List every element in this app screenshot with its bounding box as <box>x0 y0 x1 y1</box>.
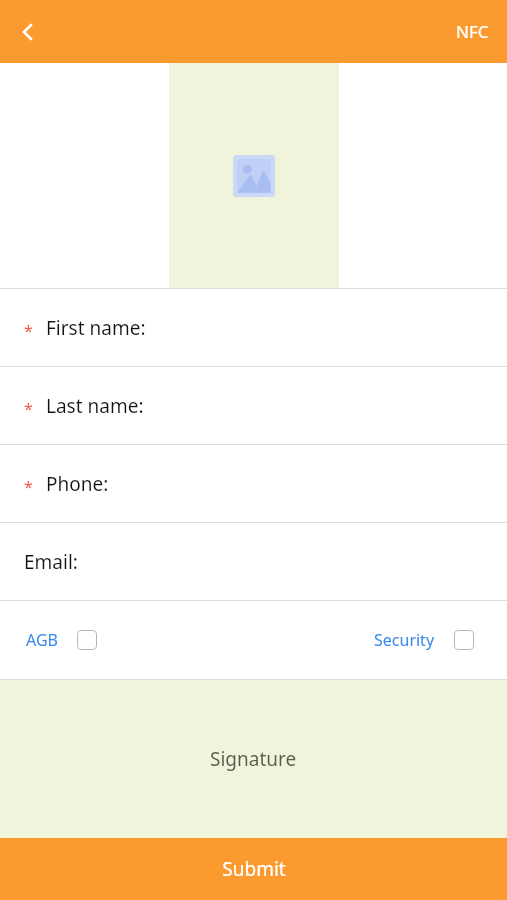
other: Checkbox <box>77 630 97 650</box>
button[interactable]: * <box>0 367 507 444</box>
staticText: Last name: <box>46 393 144 419</box>
staticText: Submit <box>222 856 286 882</box>
button[interactable]: Security <box>368 623 507 657</box>
button[interactable]: Add photo <box>169 63 339 288</box>
staticText: First name: <box>46 315 146 341</box>
button[interactable]: Submit <box>0 838 507 900</box>
staticText: * <box>24 398 33 420</box>
staticText: AGB <box>26 629 58 651</box>
staticText: Security <box>374 629 435 651</box>
button[interactable]: AGB <box>0 623 103 657</box>
staticText: Signature <box>210 746 297 772</box>
staticText: * <box>24 476 33 498</box>
button[interactable]: * <box>0 445 507 522</box>
staticText: * <box>24 320 33 342</box>
staticText: Phone: <box>46 471 109 497</box>
staticText: Email: <box>24 549 78 575</box>
button[interactable]: NFC <box>446 12 499 51</box>
button[interactable]: Back <box>4 8 52 56</box>
button[interactable]: * <box>0 289 507 366</box>
other: Checkbox <box>454 630 474 650</box>
staticText: NFC <box>456 20 489 43</box>
button[interactable]: Email: <box>0 523 507 600</box>
button[interactable]: Signature <box>0 680 507 838</box>
